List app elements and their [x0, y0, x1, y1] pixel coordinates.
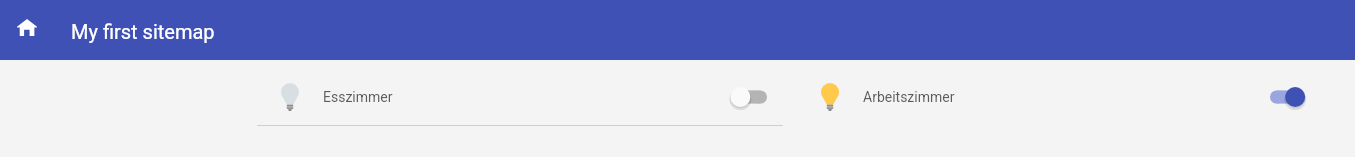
button[interactable]: Toggle Arbeitszimmer — [1263, 80, 1311, 114]
button[interactable]: Home — [8, 10, 48, 50]
button[interactable]: Toggle Esszimmer — [726, 80, 774, 114]
button[interactable]: Esszimmer — [257, 67, 783, 126]
staticText: Esszimmer — [323, 89, 393, 105]
button[interactable]: Arbeitszimmer — [797, 67, 1323, 126]
staticText: Arbeitszimmer — [863, 89, 955, 105]
staticText: My first sitemap — [71, 20, 215, 43]
